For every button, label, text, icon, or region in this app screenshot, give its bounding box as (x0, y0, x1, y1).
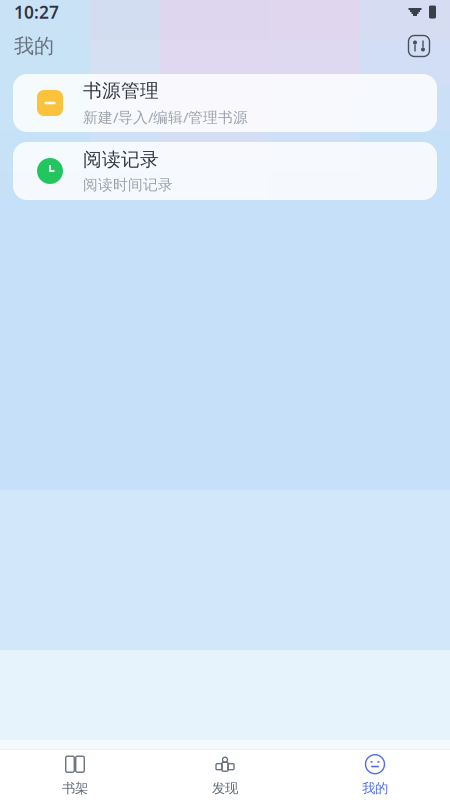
button[interactable]: 我的 (300, 750, 450, 800)
button[interactable]: 阅读记录 (13, 142, 437, 200)
button[interactable]: 书源管理 (13, 74, 437, 132)
staticText: 10:27 (14, 0, 59, 23)
button[interactable]: 发现 (150, 750, 300, 800)
staticText: 新建/导入/编辑/管理书源 (83, 107, 248, 127)
staticText: 我的 (362, 780, 388, 797)
button[interactable]: 书架 (0, 750, 150, 800)
button[interactable]: 设置 (402, 29, 436, 63)
staticText: 阅读时间记录 (83, 176, 173, 194)
staticText: 书架 (62, 780, 88, 797)
staticText: 书源管理 (83, 79, 159, 102)
staticText: 发现 (212, 780, 238, 797)
staticText: 阅读记录 (83, 148, 159, 171)
staticText: 我的 (14, 34, 54, 58)
